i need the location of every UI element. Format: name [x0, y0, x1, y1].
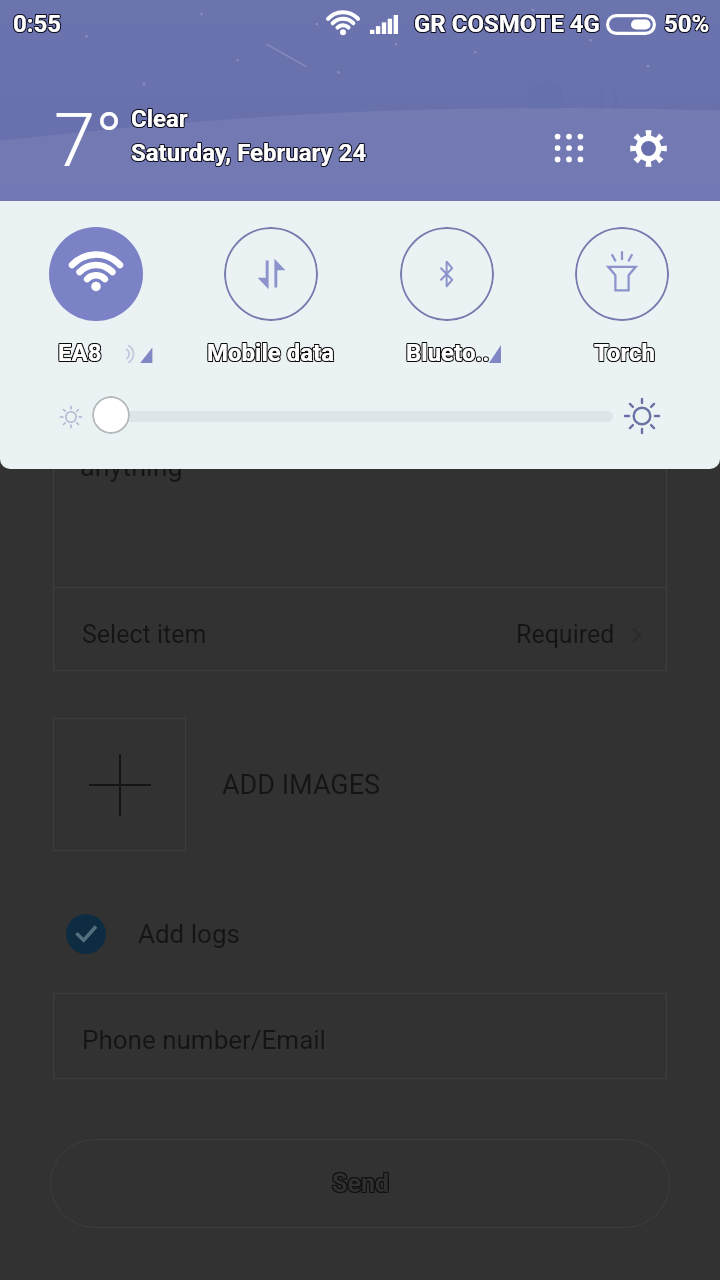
staticText: Blueto.. — [405, 340, 489, 368]
staticText: Send — [332, 1170, 389, 1199]
staticText: Clear — [130, 105, 187, 133]
staticText: Clear — [132, 105, 189, 133]
staticText: Mobile data — [207, 339, 335, 367]
staticText: 50% — [665, 11, 711, 39]
staticText: 0:55 — [13, 9, 62, 37]
button[interactable]: All apps — [541, 120, 597, 176]
staticText: Mobile data — [208, 338, 336, 366]
staticText: 0:55 — [13, 10, 62, 38]
staticText: Saturday, February 24 — [132, 140, 368, 168]
staticText: Blueto.. — [406, 339, 490, 367]
button[interactable]: EA8 — [49, 227, 143, 321]
staticText: Clear — [131, 105, 188, 133]
staticText: Saturday, February 24 — [131, 139, 367, 167]
button[interactable]: Phone number/Email — [53, 993, 667, 1079]
staticText: Required — [516, 620, 615, 649]
staticText: 0:55 — [13, 11, 62, 39]
staticText: GR COSMOTE 4G — [414, 11, 600, 39]
staticText: 0:55 — [14, 11, 63, 39]
button[interactable]: Mobile data — [224, 227, 318, 321]
staticText: Clear — [132, 106, 189, 134]
staticText: 7° — [54, 97, 124, 184]
button[interactable]: Blueto.. — [400, 227, 494, 321]
staticText: Send — [333, 1170, 390, 1199]
staticText: Mobile data — [206, 339, 334, 367]
staticText: Torch — [594, 340, 655, 368]
staticText: Clear — [130, 104, 187, 132]
button[interactable]: Send — [50, 1139, 670, 1228]
staticText: Mobile data — [206, 340, 334, 368]
button[interactable]: Please describe anything — [53, 400, 667, 588]
staticText: GR COSMOTE 4G — [413, 10, 599, 38]
staticText: GR COSMOTE 4G — [415, 11, 601, 39]
staticText: Torch — [594, 338, 655, 366]
staticText: Saturday, February 24 — [131, 140, 367, 168]
staticText: Clear — [132, 104, 189, 132]
staticText: 50% — [664, 10, 710, 38]
staticText: Clear — [130, 106, 187, 134]
staticText: 50% — [663, 11, 709, 39]
staticText: Send — [333, 1168, 390, 1197]
button[interactable]: Torch — [575, 227, 669, 321]
staticText: EA8 — [57, 338, 101, 366]
staticText: Saturday, February 24 — [131, 138, 367, 166]
staticText: Saturday, February 24 — [132, 138, 368, 166]
staticText: Torch — [593, 338, 654, 366]
staticText: GR COSMOTE 4G — [414, 10, 600, 38]
staticText: Blueto.. — [406, 338, 490, 366]
staticText: Torch — [595, 338, 656, 366]
staticText: Torch — [594, 339, 655, 367]
staticText: 0:55 — [12, 10, 61, 38]
staticText: Clear — [131, 104, 188, 132]
staticText: Torch — [593, 340, 654, 368]
staticText: Blueto.. — [407, 338, 491, 366]
staticText: Blueto.. — [405, 339, 489, 367]
staticText: EA8 — [59, 338, 103, 366]
staticText: Send — [331, 1168, 388, 1197]
staticText: EA8 — [57, 340, 101, 368]
staticText: Send — [331, 1169, 388, 1198]
staticText: Torch — [595, 340, 656, 368]
staticText: EA8 — [57, 339, 101, 367]
staticText: Phone number/Email — [82, 1025, 326, 1055]
staticText: 0:55 — [14, 10, 63, 38]
staticText: 0:55 — [12, 11, 61, 39]
staticText: Saturday, February 24 — [132, 139, 368, 167]
staticText: 50% — [664, 9, 710, 37]
staticText: GR COSMOTE 4G — [415, 10, 601, 38]
staticText: Mobile data — [208, 340, 336, 368]
staticText: GR COSMOTE 4G — [415, 9, 601, 37]
staticText: EA8 — [58, 339, 102, 367]
staticText: EA8 — [59, 340, 103, 368]
staticText: Mobile data — [206, 338, 334, 366]
staticText: 0:55 — [12, 9, 61, 37]
staticText: Blueto.. — [407, 339, 491, 367]
staticText: Clear — [131, 106, 188, 134]
staticText: Mobile data — [207, 338, 335, 366]
staticText: Torch — [593, 339, 654, 367]
staticText: 50% — [665, 9, 711, 37]
staticText: Saturday, February 24 — [130, 140, 366, 168]
staticText: GR COSMOTE 4G — [414, 9, 600, 37]
staticText: Mobile data — [208, 339, 336, 367]
staticText: Blueto.. — [406, 340, 490, 368]
staticText: Send — [332, 1169, 389, 1198]
button[interactable]: Select item — [53, 587, 667, 671]
staticText: Send — [332, 1168, 389, 1197]
staticText: Send — [333, 1169, 390, 1198]
button[interactable]: Settings — [620, 120, 676, 176]
button[interactable]: Add logs — [66, 900, 208, 968]
staticText: Blueto.. — [405, 338, 489, 366]
staticText: Send — [331, 1170, 388, 1199]
staticText: 50% — [665, 10, 711, 38]
staticText: GR COSMOTE 4G — [413, 11, 599, 39]
staticText: Select item — [82, 620, 207, 649]
staticText: Please describe anything — [80, 410, 271, 483]
staticText: 0:55 — [14, 9, 63, 37]
button[interactable]: Brightness — [92, 396, 130, 434]
button[interactable]: ADD IMAGES — [53, 718, 345, 851]
staticText: Saturday, February 24 — [130, 138, 366, 166]
staticText: EA8 — [58, 340, 102, 368]
staticText: Saturday, February 24 — [130, 139, 366, 167]
staticText: 50% — [663, 10, 709, 38]
